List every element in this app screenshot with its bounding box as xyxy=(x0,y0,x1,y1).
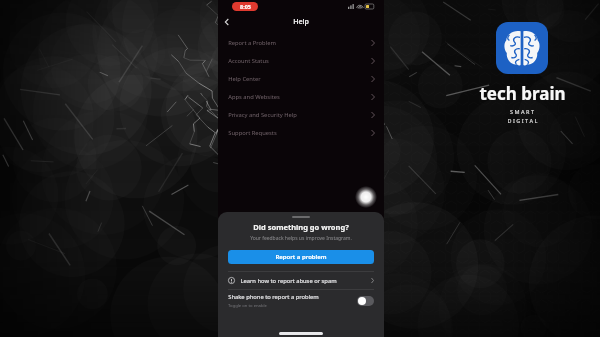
staticText: S M A R T xyxy=(510,108,534,115)
staticText: Report a problem xyxy=(275,253,327,261)
button[interactable]: Report a problem xyxy=(228,250,374,264)
staticText: Report a Problem xyxy=(228,39,276,47)
button[interactable]: Apps and Websites xyxy=(218,88,384,106)
staticText: Privacy and Security Help xyxy=(228,111,297,119)
staticText: Apps and Websites xyxy=(228,93,280,101)
staticText: Account Status xyxy=(228,57,269,65)
button[interactable]: Shake to report toggle xyxy=(357,296,374,306)
button[interactable]: Privacy and Security Help xyxy=(218,106,384,124)
button[interactable]: Learn how to report abuse or spam xyxy=(228,272,374,289)
button[interactable]: Back xyxy=(218,13,235,30)
button[interactable]: Help Center xyxy=(218,70,384,88)
staticText: Help Center xyxy=(228,75,261,83)
staticText: Toggle on to enable xyxy=(228,303,267,309)
staticText: 8:05 xyxy=(240,3,251,10)
staticText: Learn how to report abuse or spam xyxy=(240,277,337,285)
staticText: tech brain xyxy=(479,82,566,105)
staticText: D I G I T A L xyxy=(507,117,538,124)
button[interactable]: Support Requests xyxy=(218,124,384,142)
button[interactable]: Report a Problem xyxy=(218,34,384,52)
staticText: Shake phone to report a problem xyxy=(228,293,319,301)
button[interactable]: Shake phone to report a problem xyxy=(228,290,374,312)
button[interactable]: Account Status xyxy=(218,52,384,70)
staticText: Your feedback helps us improve Instagram… xyxy=(250,235,352,242)
staticText: Help xyxy=(293,17,309,27)
other: Tech Brain logo xyxy=(496,22,548,74)
staticText: Did something go wrong? xyxy=(253,222,349,232)
staticText: Support Requests xyxy=(228,129,277,137)
